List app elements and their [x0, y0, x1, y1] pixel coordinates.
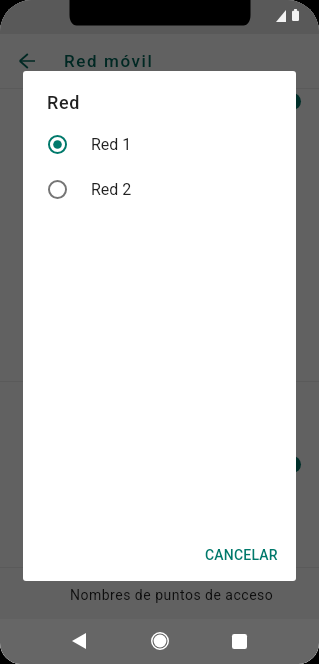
button[interactable]: Itinerancia de datos	[0, 89, 319, 381]
button[interactable]: Red 1	[23, 122, 296, 167]
button[interactable]: Red	[0, 452, 319, 567]
staticText: Red 1	[91, 135, 132, 154]
button[interactable]: Back	[11, 45, 43, 77]
staticText: Conectarse a servicios de datos cuando e…	[26, 124, 272, 154]
staticText: Red 2	[91, 180, 132, 199]
button[interactable]: Recent apps	[219, 621, 259, 661]
button[interactable]: Home	[140, 621, 180, 661]
button[interactable]: Tipo de red preferido	[0, 382, 319, 567]
staticText: Red móvil	[64, 51, 154, 71]
staticText: Red	[47, 92, 81, 113]
staticText: Nombres de puntos de acceso	[70, 587, 274, 603]
staticText: Itinerancia de datos	[26, 103, 158, 121]
button[interactable]: Red 2	[23, 167, 296, 212]
staticText: CANCELAR	[205, 547, 278, 563]
button[interactable]: CANCELAR	[197, 539, 286, 571]
button[interactable]: Back	[59, 621, 99, 661]
